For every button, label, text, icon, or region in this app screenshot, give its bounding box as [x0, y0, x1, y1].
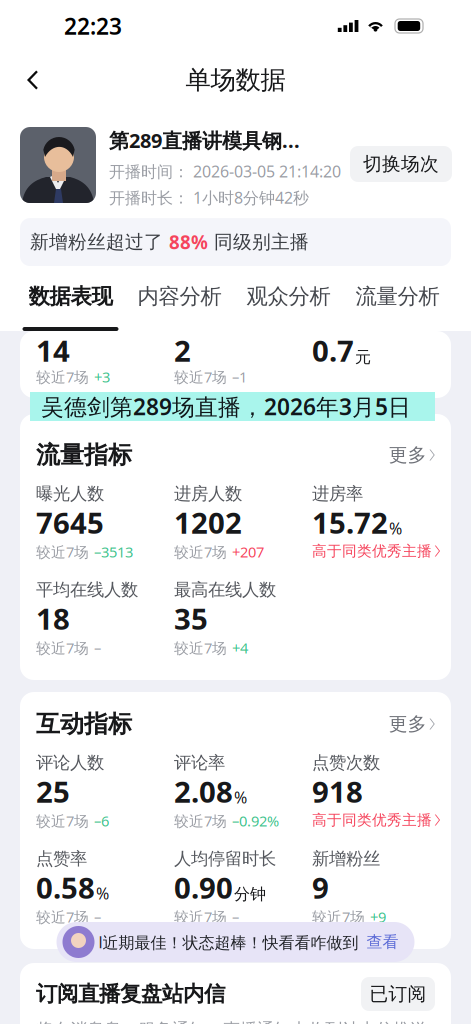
staticText: 更多	[389, 712, 427, 735]
staticText: –	[232, 907, 239, 926]
staticText: 进房率	[312, 483, 363, 504]
staticText: %	[389, 518, 402, 539]
staticText: 元	[355, 347, 371, 367]
staticText: 25	[36, 772, 70, 811]
staticText: %	[96, 883, 109, 904]
staticText: 单场数据	[185, 64, 285, 95]
staticText: 9	[312, 868, 329, 907]
staticText: 35	[174, 599, 208, 638]
staticText: –	[94, 638, 101, 657]
staticText: 2.08	[174, 772, 233, 811]
staticText: +9	[370, 907, 386, 926]
staticText: 较近7场	[174, 542, 227, 561]
staticText: +3	[94, 367, 110, 386]
staticText: +4	[232, 638, 248, 657]
staticText: 流量指标	[36, 440, 132, 470]
button[interactable]: 流量分析	[343, 266, 452, 331]
button[interactable]: 更多	[389, 443, 435, 466]
staticText: 点赞次数	[312, 752, 380, 773]
staticText: 较近7场	[174, 811, 227, 830]
staticText: l近期最佳！状态超棒！快看看咋做到	[98, 931, 358, 953]
staticText: 较近7场	[36, 907, 89, 926]
staticText: 进房人数	[174, 483, 242, 504]
staticText: 流量分析	[355, 283, 439, 310]
staticText: 平均在线人数	[36, 579, 138, 600]
staticText: 查看	[366, 932, 398, 952]
staticText: 更多	[389, 443, 427, 466]
button[interactable]: Back	[8, 58, 56, 102]
staticText: 已订阅	[369, 982, 426, 1005]
staticText: 最高在线人数	[174, 579, 276, 600]
staticText: 吴德剑第289场直播，2026年3月5日	[41, 391, 411, 421]
staticText: 评论人数	[36, 752, 104, 773]
staticText: 分钟	[234, 884, 266, 904]
staticText: –	[94, 907, 101, 926]
staticText: 88%	[169, 230, 208, 254]
staticText: 开播时间： 2026-03-05 21:14:20	[109, 161, 341, 182]
staticText: 切换场次	[363, 152, 439, 175]
button[interactable]: 切换场次	[350, 146, 452, 182]
staticText: 评论率	[174, 752, 225, 773]
staticText: 高于同类优秀主播	[312, 811, 432, 829]
staticText: 15.72	[312, 503, 388, 542]
staticText: –6	[94, 811, 109, 830]
staticText: 较近7场	[36, 638, 89, 657]
staticText: –1	[232, 367, 247, 386]
staticText: 较近7场	[312, 907, 365, 926]
staticText: 新增粉丝	[312, 848, 380, 869]
staticText: 第289直播讲模具钢...	[109, 127, 300, 154]
staticText: –3513	[94, 542, 133, 561]
staticText: 7645	[36, 503, 104, 542]
staticText: 点赞率	[36, 848, 87, 869]
staticText: 内容分析	[137, 283, 221, 310]
staticText: 14	[36, 331, 70, 370]
button[interactable]: l近期最佳！状态超棒！快看看咋做到	[56, 922, 414, 962]
staticText: 将在消息息、服务通知、直播通知中收到站内信推送	[36, 1019, 427, 1024]
staticText: 0.90	[174, 868, 233, 907]
staticText: +207	[232, 542, 264, 561]
button[interactable]: 已订阅	[361, 977, 435, 1011]
staticText: 观众分析	[246, 283, 330, 310]
staticText: 0.7	[312, 331, 354, 370]
staticText: 曝光人数	[36, 483, 104, 504]
staticText: 2	[174, 331, 191, 370]
button[interactable]: 内容分析	[125, 266, 234, 331]
staticText: 新增粉丝超过了	[30, 231, 169, 253]
staticText: 同级别主播	[208, 231, 309, 253]
staticText: 互动指标	[36, 709, 132, 739]
staticText: 数据表现	[28, 283, 112, 310]
staticText: 22:23	[64, 11, 122, 41]
staticText: 人均停留时长	[174, 848, 276, 869]
staticText: 开播时长： 1小时8分钟42秒	[109, 187, 309, 208]
staticText: 较近7场	[174, 907, 227, 926]
staticText: 较近7场	[36, 542, 89, 561]
staticText: 18	[36, 599, 70, 638]
staticText: 高于同类优秀主播	[312, 542, 432, 560]
staticText: 订阅直播复盘站内信	[36, 981, 225, 1007]
staticText: 918	[312, 772, 363, 811]
staticText: 较近7场	[174, 367, 227, 386]
button[interactable]: 观众分析	[234, 266, 343, 331]
staticText: –0.92%	[232, 811, 279, 830]
button[interactable]: 更多	[389, 712, 435, 735]
button[interactable]: 数据表现	[16, 266, 125, 331]
staticText: %	[234, 787, 247, 808]
staticText: 较近7场	[36, 367, 89, 386]
staticText: 较近7场	[174, 638, 227, 657]
staticText: 较近7场	[36, 811, 89, 830]
staticText: 0.58	[36, 868, 95, 907]
staticText: 1202	[174, 503, 242, 542]
